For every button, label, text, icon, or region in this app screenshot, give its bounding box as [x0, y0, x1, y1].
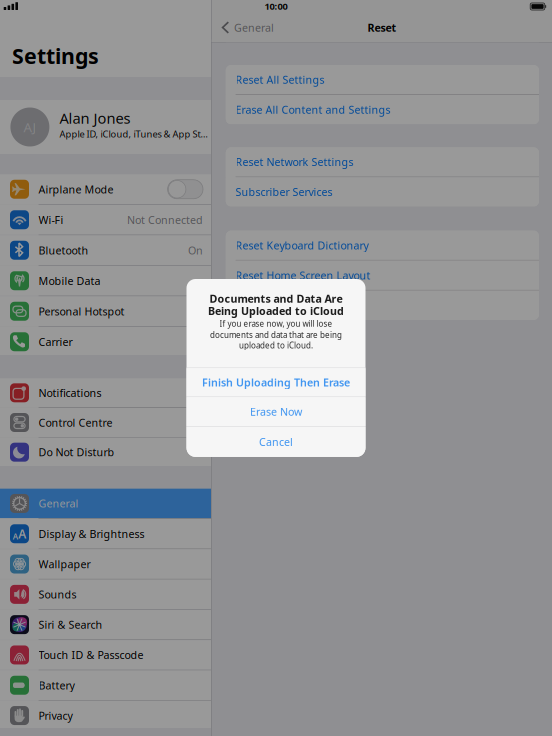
- staticText: Alan Jones: [59, 108, 130, 128]
- button[interactable]: Airplane Mode: [0, 174, 211, 204]
- staticText: Siri & Search: [39, 618, 103, 632]
- button[interactable]: Reset Location & Privacy: [226, 291, 539, 320]
- staticText: If you erase now, you will lose: [219, 318, 332, 329]
- staticText: Bluetooth: [39, 243, 89, 257]
- staticText: Touch ID & Passcode: [39, 648, 144, 662]
- button[interactable]: Finish Uploading Then Erase: [186, 368, 365, 396]
- button[interactable]: Erase All Content and Settings: [226, 95, 539, 124]
- staticText: Finish Uploading Then Erase: [202, 375, 350, 389]
- staticText: Reset Location & Privacy: [236, 298, 358, 312]
- staticText: Personal Hotspot: [39, 304, 125, 318]
- button[interactable]: Privacy: [0, 701, 211, 730]
- staticText: Privacy: [39, 708, 73, 723]
- button[interactable]: Carrier: [0, 327, 211, 357]
- staticText: Cancel: [259, 435, 293, 449]
- staticText: Mobile Data: [39, 274, 101, 288]
- staticText: Reset Network Settings: [236, 155, 354, 169]
- staticText: Display & Brightness: [39, 527, 145, 541]
- staticText: Not Connected: [127, 213, 203, 227]
- button[interactable]: Reset Keyboard Dictionary: [226, 231, 539, 260]
- button[interactable]: Reset Home Screen Layout: [226, 261, 539, 290]
- staticText: Being Uploaded to iCloud: [208, 304, 344, 318]
- button[interactable]: A: [0, 519, 211, 548]
- staticText: Wallpaper: [39, 557, 91, 571]
- staticText: On: [188, 243, 203, 257]
- button[interactable]: Siri & Search: [0, 610, 211, 639]
- button[interactable]: Battery: [0, 670, 211, 700]
- button[interactable]: Touch ID & Passcode: [0, 640, 211, 670]
- button[interactable]: Wi-Fi: [0, 205, 211, 235]
- staticText: Reset Home Screen Layout: [236, 268, 371, 282]
- staticText: A: [13, 531, 18, 542]
- button[interactable]: AJ: [0, 100, 211, 154]
- button[interactable]: Subscriber Services: [226, 177, 539, 207]
- button[interactable]: Mobile Data: [0, 266, 211, 296]
- staticText: Erase All Content and Settings: [236, 103, 391, 117]
- button[interactable]: Personal Hotspot: [0, 296, 211, 326]
- button[interactable]: General: [0, 489, 211, 518]
- staticText: General: [234, 20, 274, 35]
- button[interactable]: Reset Network Settings: [226, 147, 539, 177]
- staticText: Wi-Fi: [39, 213, 64, 227]
- staticText: Reset All Settings: [236, 73, 325, 87]
- staticText: Subscriber Services: [236, 185, 333, 199]
- staticText: Do Not Disturb: [39, 445, 115, 459]
- staticText: Carrier: [39, 335, 73, 349]
- button[interactable]: Bluetooth: [0, 235, 211, 265]
- staticText: Documents and Data Are: [209, 291, 342, 306]
- staticText: General: [39, 496, 79, 511]
- staticText: Airplane Mode: [39, 182, 114, 196]
- button[interactable]: Notifications: [0, 378, 211, 407]
- staticText: Battery: [39, 678, 75, 692]
- button[interactable]: Cancel: [186, 427, 365, 457]
- staticText: Reset: [367, 20, 396, 35]
- staticText: Reset Keyboard Dictionary: [236, 238, 369, 252]
- staticText: A: [18, 526, 26, 542]
- staticText: Apple ID, iCloud, iTunes & App St…: [59, 128, 207, 140]
- staticText: uploaded to iCloud.: [239, 340, 313, 351]
- staticText: Settings: [12, 42, 99, 70]
- button[interactable]: Sounds: [0, 579, 211, 609]
- staticText: Notifications: [39, 386, 102, 400]
- staticText: 10:00: [264, 0, 287, 12]
- button[interactable]: Reset All Settings: [226, 65, 539, 94]
- button[interactable]: Wallpaper: [0, 549, 211, 579]
- staticText: Sounds: [39, 587, 77, 601]
- staticText: Erase Now: [250, 405, 302, 419]
- button[interactable]: Do Not Disturb: [0, 438, 211, 467]
- staticText: Control Centre: [39, 415, 113, 430]
- button[interactable]: Control Centre: [0, 408, 211, 437]
- button[interactable]: Erase Now: [186, 397, 365, 426]
- staticText: AJ: [23, 118, 36, 136]
- staticText: documents and data that are being: [210, 330, 342, 340]
- button[interactable]: General: [212, 17, 280, 38]
